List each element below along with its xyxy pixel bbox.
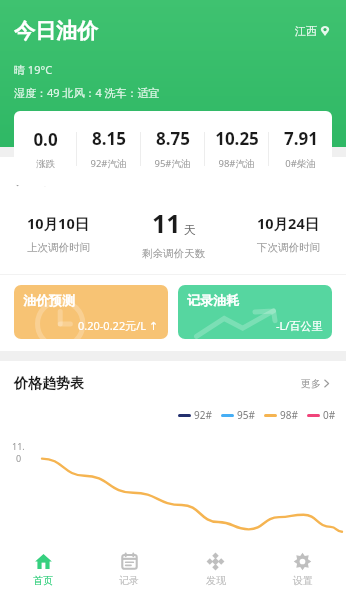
staticText: 7.91 xyxy=(284,127,318,150)
staticText: 11. xyxy=(12,440,25,452)
button[interactable]: 设置 xyxy=(259,544,346,594)
staticText: 首页 xyxy=(33,574,53,587)
staticText: 8.15 xyxy=(92,127,126,150)
button[interactable]: 江西 xyxy=(291,20,334,42)
staticText: 92#汽油 xyxy=(90,157,127,170)
button[interactable]: 首页 xyxy=(0,544,86,594)
staticText: 11 xyxy=(152,206,181,240)
staticText: 0#柴油 xyxy=(285,157,316,170)
staticText: 更多 xyxy=(301,377,321,390)
staticText: 记录油耗 xyxy=(187,292,239,308)
staticText: 涨跌 xyxy=(36,158,55,170)
button[interactable]: 油价预测 xyxy=(14,285,168,339)
staticText: 晴 19°C xyxy=(14,62,53,77)
staticText: 0.20-0.22元/L ↑ xyxy=(78,318,159,333)
staticText: 0 xyxy=(16,452,22,464)
staticText: 江西 xyxy=(295,24,317,38)
staticText: 调价日期 xyxy=(14,171,70,189)
staticText: 0.0 xyxy=(33,128,58,151)
button[interactable]: 更多 xyxy=(297,373,334,394)
staticText: 价格趋势表 xyxy=(14,375,84,393)
staticText: 发现 xyxy=(206,574,226,587)
staticText: 8.75 xyxy=(156,127,190,150)
staticText: 天 xyxy=(184,222,196,237)
staticText: 92# xyxy=(194,408,212,422)
staticText: 10月10日 xyxy=(27,213,90,233)
staticText: 10月24日 xyxy=(257,213,320,233)
staticText: 设置 xyxy=(293,574,313,587)
staticText: 剩余调价天数 xyxy=(142,247,205,260)
staticText: 98#汽油 xyxy=(218,157,255,170)
staticText: 上次调价时间 xyxy=(27,241,90,254)
button[interactable]: 发现 xyxy=(172,544,259,594)
staticText: 下次调价时间 xyxy=(257,241,320,254)
staticText: 0# xyxy=(323,408,336,422)
button[interactable]: 记录 xyxy=(86,544,172,594)
button[interactable]: 记录油耗 xyxy=(178,285,332,339)
staticText: 10.25 xyxy=(215,127,259,150)
staticText: 今日油价 xyxy=(14,18,98,44)
button[interactable]: 0.0 xyxy=(14,111,332,186)
staticText: 95# xyxy=(237,408,255,422)
staticText: 湿度：49 北风：4 洗车：适宜 xyxy=(14,85,160,100)
staticText: 98# xyxy=(280,408,298,422)
staticText: -L/百公里 xyxy=(276,318,323,333)
staticText: 记录 xyxy=(119,574,139,587)
staticText: 油价预测 xyxy=(23,292,75,308)
staticText: 95#汽油 xyxy=(154,157,191,170)
